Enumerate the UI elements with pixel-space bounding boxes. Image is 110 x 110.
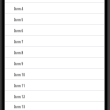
button[interactable]: Item 4 <box>0 3 110 13</box>
staticText: Item 7 <box>14 39 24 43</box>
staticText: Item 13 <box>14 106 25 110</box>
staticText: Item 11 <box>14 85 25 89</box>
staticText: Item 12 <box>14 94 25 98</box>
button[interactable]: Item 7 <box>0 36 110 46</box>
staticText: Item 4 <box>14 7 24 11</box>
staticText: Item 12 <box>14 96 25 100</box>
staticText: Item 6 <box>14 30 24 34</box>
staticText: Item 4 <box>14 8 24 12</box>
staticText: Item 8 <box>14 50 24 54</box>
staticText: Item 5 <box>14 18 24 22</box>
staticText: Item 13 <box>14 105 25 109</box>
staticText: Item 13 <box>14 104 25 108</box>
staticText: Item 9 <box>14 62 24 66</box>
staticText: Item 9 <box>14 63 24 67</box>
staticText: Item 11 <box>14 84 25 88</box>
staticText: Item 8 <box>14 51 24 55</box>
staticText: Item 7 <box>14 40 24 44</box>
staticText: Item 6 <box>14 28 24 32</box>
staticText: Item 10 <box>14 72 25 76</box>
staticText: Item 4 <box>14 6 24 10</box>
button[interactable]: Item 12 <box>0 91 110 101</box>
staticText: Item 7 <box>14 41 24 45</box>
button[interactable]: Item 6 <box>0 25 110 35</box>
staticText: Item 10 <box>14 74 25 78</box>
staticText: Item 10 <box>14 73 25 77</box>
staticText: Item 5 <box>14 17 24 21</box>
staticText: Item 11 <box>14 83 25 87</box>
button[interactable]: Item 11 <box>0 80 110 90</box>
staticText: Item 5 <box>14 19 24 23</box>
button[interactable]: Item 10 <box>0 69 110 79</box>
staticText: Item 9 <box>14 61 24 65</box>
button[interactable]: Item 5 <box>0 14 110 24</box>
staticText: Item 6 <box>14 29 24 33</box>
staticText: Item 8 <box>14 52 24 56</box>
button[interactable]: Item 13 <box>0 102 110 110</box>
button[interactable]: Item 8 <box>0 47 110 57</box>
staticText: Item 12 <box>14 95 25 99</box>
button[interactable]: Item 9 <box>0 58 110 68</box>
